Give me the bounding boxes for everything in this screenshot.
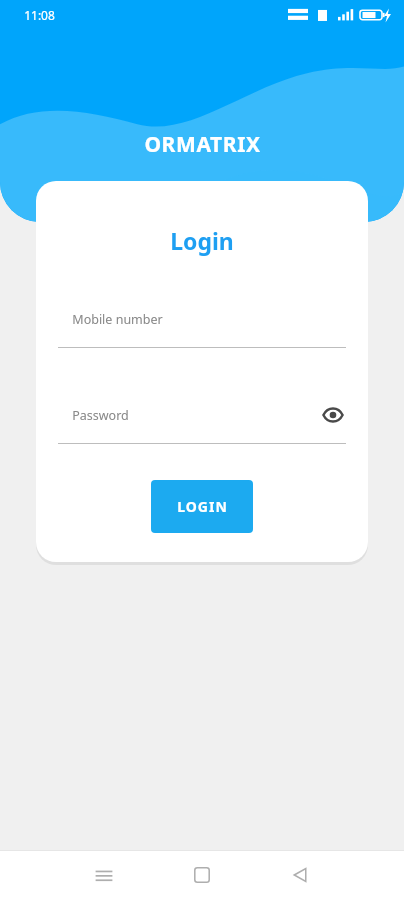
staticText: Password xyxy=(72,407,129,424)
button[interactable]: Mobile number xyxy=(36,304,368,348)
button[interactable]: Password xyxy=(36,400,368,444)
staticText: ORMATRIX xyxy=(144,130,261,159)
button[interactable]: Show password xyxy=(320,402,346,428)
staticText: LOGIN xyxy=(177,497,228,516)
staticText: Login xyxy=(170,225,234,256)
button[interactable]: Home xyxy=(178,851,226,899)
button[interactable]: LOGIN xyxy=(151,480,253,533)
staticText: Mobile number xyxy=(72,311,163,328)
button[interactable]: Back xyxy=(276,851,324,899)
staticText: 11:08 xyxy=(24,7,55,23)
button[interactable]: Menu xyxy=(80,851,128,899)
